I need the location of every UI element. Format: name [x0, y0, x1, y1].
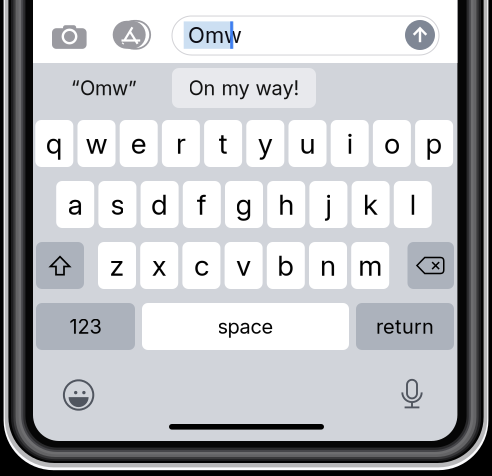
- staticText: On my way!: [188, 76, 299, 100]
- staticText: r: [176, 127, 186, 160]
- button[interactable]: q: [35, 120, 73, 167]
- staticText: w: [85, 127, 107, 160]
- staticText: l: [410, 188, 416, 221]
- button[interactable]: a: [56, 181, 94, 228]
- button[interactable]: g: [225, 181, 263, 228]
- button[interactable]: return: [356, 303, 454, 350]
- button[interactable]: w: [77, 120, 115, 167]
- button[interactable]: p: [415, 120, 453, 167]
- staticText: a: [68, 188, 83, 221]
- staticText: s: [110, 188, 124, 221]
- button[interactable]: r: [162, 120, 200, 167]
- staticText: q: [46, 127, 63, 160]
- button[interactable]: z: [98, 242, 136, 289]
- button[interactable]: j: [309, 181, 347, 228]
- button[interactable]: u: [288, 120, 326, 167]
- staticText: c: [194, 249, 209, 282]
- staticText: u: [299, 127, 315, 160]
- staticText: b: [277, 249, 294, 282]
- staticText: g: [235, 188, 252, 221]
- button[interactable]: m: [351, 242, 389, 289]
- staticText: 123: [69, 314, 101, 339]
- button[interactable]: On my way!: [172, 68, 316, 108]
- button[interactable]: x: [140, 242, 178, 289]
- button[interactable]: “Omw”: [60, 70, 148, 106]
- button[interactable]: f: [183, 181, 221, 228]
- staticText: z: [109, 249, 124, 282]
- staticText: y: [258, 127, 273, 160]
- button[interactable]: l: [394, 181, 432, 228]
- staticText: Omw: [188, 22, 242, 48]
- button[interactable]: h: [267, 181, 305, 228]
- button[interactable]: Camera: [52, 25, 87, 49]
- staticText: p: [426, 127, 443, 160]
- button[interactable]: c: [182, 242, 220, 289]
- button[interactable]: Send: [405, 20, 435, 50]
- staticText: k: [363, 188, 378, 221]
- button[interactable]: b: [267, 242, 305, 289]
- staticText: v: [236, 249, 251, 282]
- button[interactable]: s: [98, 181, 136, 228]
- button[interactable]: d: [141, 181, 179, 228]
- button[interactable]: k: [352, 181, 390, 228]
- staticText: “Omw”: [71, 76, 137, 100]
- staticText: o: [384, 127, 400, 160]
- staticText: t: [219, 127, 228, 160]
- button[interactable]: n: [309, 242, 347, 289]
- button[interactable]: t: [204, 120, 242, 167]
- staticText: space: [217, 314, 273, 339]
- staticText: h: [278, 188, 294, 221]
- staticText: e: [131, 127, 147, 160]
- button[interactable]: space: [142, 303, 349, 350]
- staticText: j: [325, 188, 331, 221]
- button[interactable]: i: [331, 120, 369, 167]
- button[interactable]: e: [120, 120, 158, 167]
- staticText: m: [358, 249, 382, 282]
- staticText: return: [376, 314, 434, 339]
- button[interactable]: y: [246, 120, 284, 167]
- staticText: i: [347, 127, 353, 160]
- button[interactable]: v: [225, 242, 263, 289]
- button[interactable]: Emoji: [64, 380, 93, 410]
- button[interactable]: App Store: [113, 21, 151, 49]
- button[interactable]: 123: [36, 303, 135, 350]
- staticText: x: [152, 249, 167, 282]
- button[interactable]: Dictation: [401, 379, 423, 409]
- button[interactable]: Shift: [36, 242, 84, 289]
- staticText: f: [197, 188, 207, 221]
- button[interactable]: Delete: [407, 242, 454, 289]
- staticText: d: [151, 188, 168, 221]
- staticText: n: [320, 249, 336, 282]
- button[interactable]: o: [373, 120, 411, 167]
